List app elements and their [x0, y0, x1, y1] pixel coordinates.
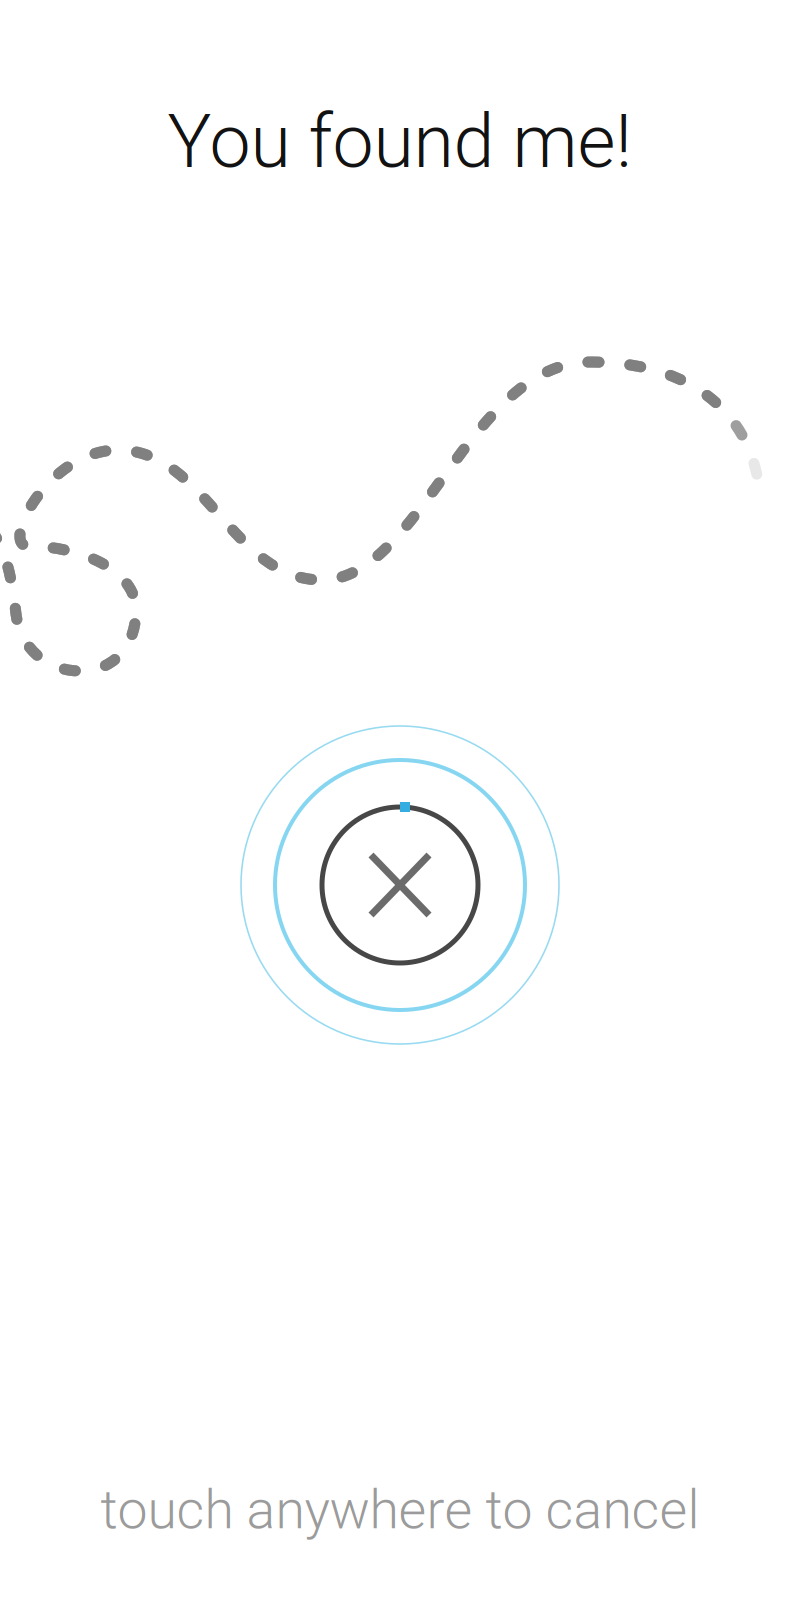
staticText: You found me!	[167, 99, 632, 185]
button[interactable]: Touch anywhere to cancel	[0, 0, 800, 1600]
staticText: touch anywhere to cancel	[100, 1479, 699, 1541]
